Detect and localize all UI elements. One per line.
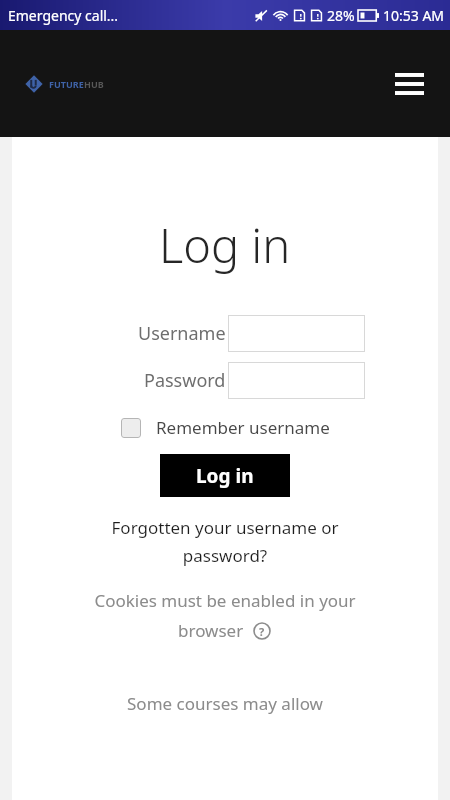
button[interactable]: Remember username bbox=[117, 414, 334, 441]
staticText: ? bbox=[259, 624, 265, 639]
staticText: 28% bbox=[327, 6, 355, 25]
staticText: HUB bbox=[84, 78, 104, 90]
staticText: 10:53 AM bbox=[383, 6, 445, 25]
staticText: Some courses may allow bbox=[12, 692, 438, 715]
button[interactable]: Forgotten your username or password? bbox=[12, 516, 438, 567]
staticText: browser bbox=[178, 619, 244, 642]
staticText: Log in bbox=[196, 463, 254, 489]
button[interactable]: Log in bbox=[160, 454, 290, 497]
staticText: Cookies must be enabled in your bbox=[94, 589, 356, 612]
button[interactable]: Help bbox=[252, 621, 272, 641]
staticText: Emergency call... bbox=[8, 6, 119, 25]
button[interactable]: Password bbox=[228, 362, 365, 399]
staticText: Log in bbox=[159, 213, 291, 277]
button[interactable]: Menu bbox=[387, 62, 431, 106]
staticText: FUTURE bbox=[49, 78, 84, 90]
button[interactable]: FutureHub home bbox=[25, 75, 104, 93]
staticText: Password bbox=[144, 368, 226, 393]
button[interactable]: Username bbox=[228, 315, 365, 352]
staticText: Remember username bbox=[156, 416, 330, 439]
staticText: Username bbox=[138, 321, 226, 346]
